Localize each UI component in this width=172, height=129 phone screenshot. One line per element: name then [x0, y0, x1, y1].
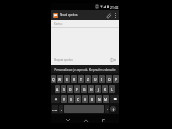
staticText: W	[58, 77, 62, 82]
button[interactable]: E	[64, 75, 70, 83]
staticText: Personalizace je zapnutá. Klepnutím zobr…	[51, 68, 119, 72]
button[interactable]: U	[92, 75, 98, 83]
staticText: P	[115, 77, 118, 82]
button[interactable]: .	[105, 105, 109, 113]
button[interactable]: Komu:	[51, 20, 119, 27]
staticText: ,	[61, 107, 62, 111]
staticText: T	[80, 77, 82, 82]
button[interactable]: A	[55, 85, 60, 93]
staticText: Komu:	[54, 22, 63, 26]
button[interactable]: N	[96, 95, 102, 103]
button[interactable]: G	[81, 85, 87, 93]
staticText: G	[83, 87, 86, 92]
button[interactable]: J	[95, 85, 101, 93]
staticText: .	[107, 107, 108, 111]
button[interactable]: Back	[64, 116, 72, 124]
button[interactable]: F	[74, 85, 80, 93]
staticText: Q	[52, 77, 55, 82]
button[interactable]: T	[78, 75, 84, 83]
staticText: O	[108, 77, 111, 82]
button[interactable]: Y	[61, 95, 67, 103]
button[interactable]: K	[102, 85, 108, 93]
button[interactable]: R	[71, 75, 77, 83]
button[interactable]: I	[99, 75, 105, 83]
button[interactable]: B	[89, 95, 95, 103]
button[interactable]: Home	[82, 116, 90, 124]
staticText: 21:02	[110, 5, 119, 9]
staticText: C	[77, 97, 80, 102]
staticText: I	[101, 77, 103, 82]
button[interactable]: P	[113, 75, 119, 83]
button[interactable]: Enter	[110, 105, 116, 113]
button[interactable]: X	[68, 95, 74, 103]
button[interactable]: V	[82, 95, 88, 103]
button[interactable]: ?123	[52, 105, 58, 113]
staticText: V	[84, 97, 87, 102]
staticText: R	[73, 77, 76, 82]
staticText: J	[98, 87, 99, 92]
staticText: L	[111, 87, 113, 92]
button[interactable]: Attach	[104, 11, 112, 19]
staticText: K	[104, 87, 107, 92]
button[interactable]: D	[67, 85, 73, 93]
button[interactable]: Recents	[99, 116, 107, 124]
button[interactable]: L	[109, 85, 115, 93]
button[interactable]: C	[75, 95, 81, 103]
staticText: D	[69, 87, 72, 92]
button[interactable]: H	[88, 85, 94, 93]
staticText: A	[56, 87, 59, 92]
button[interactable]: Z	[85, 75, 91, 83]
staticText: U	[94, 77, 97, 82]
staticText: S	[63, 87, 65, 92]
button[interactable]: S	[61, 85, 66, 93]
staticText: B	[91, 97, 94, 102]
button[interactable]: Send	[109, 56, 117, 64]
button[interactable]: Q	[51, 75, 56, 83]
staticText: M	[104, 97, 108, 102]
staticText: Z	[87, 77, 89, 82]
staticText: H	[90, 87, 93, 92]
staticText: Nová zpráva	[60, 13, 78, 17]
button[interactable]: ,	[59, 105, 63, 113]
staticText: Y	[63, 97, 65, 102]
button[interactable]: Shift	[51, 95, 60, 103]
staticText: N	[98, 97, 101, 102]
staticText: X	[70, 97, 72, 102]
button[interactable]: Backspace	[110, 95, 119, 103]
staticText: E	[66, 77, 68, 82]
button[interactable]: W	[57, 75, 63, 83]
button[interactable]: M	[103, 95, 109, 103]
button[interactable]: More options	[112, 12, 118, 18]
staticText: F	[76, 87, 78, 92]
staticText: ?123	[52, 108, 58, 111]
button[interactable]: O	[106, 75, 112, 83]
staticText: Napsat zprávu	[54, 58, 73, 62]
